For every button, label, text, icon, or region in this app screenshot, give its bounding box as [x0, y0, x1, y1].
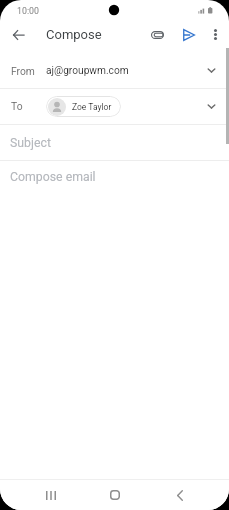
- staticText: Subject: [10, 136, 51, 150]
- staticText: From: [11, 65, 35, 77]
- staticText: Zoe Taylor: [72, 102, 112, 112]
- staticText: Compose: [46, 27, 102, 42]
- button[interactable]: Back: [6, 23, 30, 47]
- button[interactable]: Compose email: [0, 161, 229, 510]
- button[interactable]: Recent apps: [30, 480, 71, 510]
- button[interactable]: Subject: [0, 125, 229, 160]
- button[interactable]: Home: [94, 480, 135, 510]
- button[interactable]: Back: [159, 480, 200, 510]
- button[interactable]: Zoe Taylor: [46, 96, 121, 117]
- staticText: Compose email: [10, 170, 96, 184]
- button[interactable]: To: [0, 89, 229, 124]
- button[interactable]: Attach file: [146, 23, 169, 46]
- button[interactable]: From: [0, 52, 229, 88]
- staticText: To: [11, 100, 23, 112]
- button[interactable]: More options: [204, 23, 227, 46]
- staticText: aj@groupwm.com: [46, 65, 129, 77]
- staticText: 10:00: [17, 6, 39, 16]
- button[interactable]: Send: [177, 23, 200, 46]
